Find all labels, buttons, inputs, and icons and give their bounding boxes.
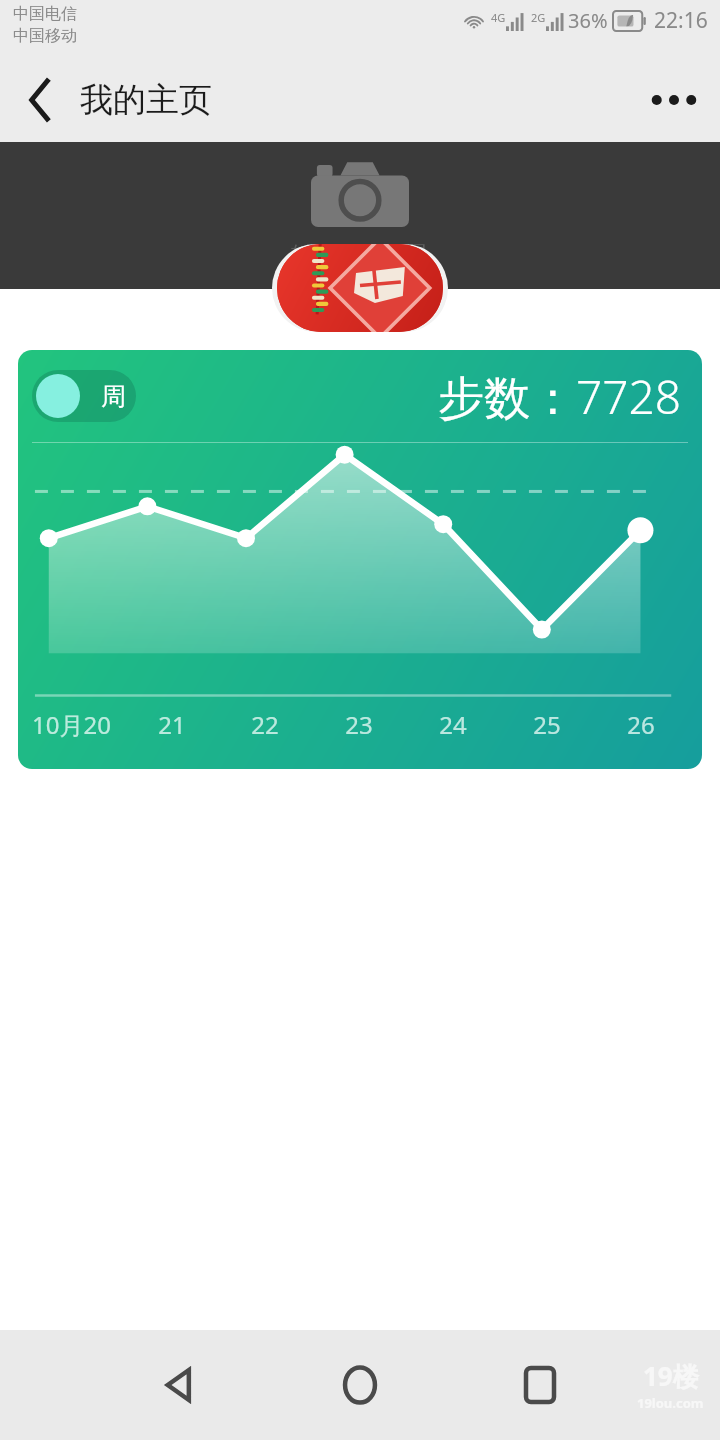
staticText: 2G [531,10,546,25]
staticText: 23 [345,708,373,741]
button[interactable]: More options [642,68,706,132]
staticText: 周 [101,381,126,412]
staticText: 19楼 [643,1358,699,1394]
staticText: 我的主页 [80,79,212,121]
staticText: 22:16 [654,6,708,35]
staticText: 中国电信 [13,4,77,24]
button[interactable]: 轻触设置背景 [0,142,720,289]
button[interactable]: Profile photo [272,244,448,332]
button[interactable]: Home [320,1345,400,1425]
button[interactable]: Back [140,1345,220,1425]
staticText: 10月20 [32,708,111,741]
staticText: 36% [568,7,608,34]
staticText: 21 [158,708,186,741]
staticText: 25 [533,708,561,741]
staticText: 19lou.com [637,1394,704,1412]
staticText: 中国移动 [13,26,77,46]
button[interactable]: 周 [32,370,136,422]
button[interactable]: Back [12,72,68,128]
staticText: 24 [439,708,467,741]
staticText: 4G [491,10,506,25]
staticText: 轻触设置背景 [291,241,429,270]
staticText: 22 [251,708,279,741]
button[interactable]: Recent apps [500,1345,580,1425]
button[interactable]: 周 [18,350,702,769]
staticText: 步数：7728 [438,365,682,428]
staticText: 26 [627,708,655,741]
